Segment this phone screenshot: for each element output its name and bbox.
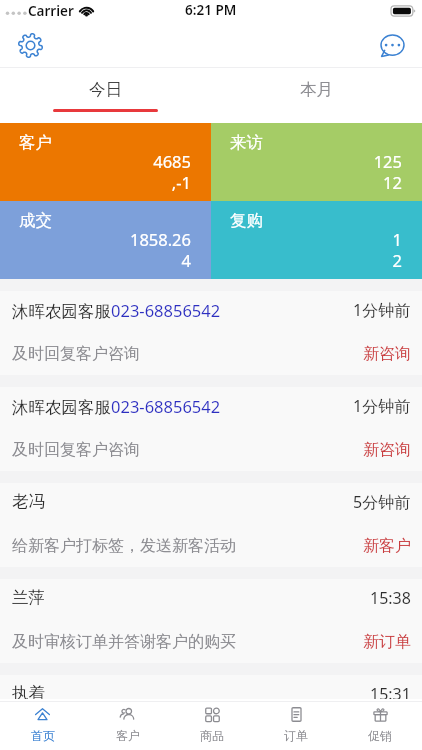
button[interactable]: Settings [13, 28, 47, 62]
staticText: 今日 [89, 79, 122, 100]
button[interactable]: 来访 [211, 123, 422, 201]
staticText: 15:31 [370, 683, 411, 699]
staticText: 5分钟前 [353, 491, 411, 513]
button[interactable]: 老冯 [0, 483, 422, 567]
staticText: 4685 ,-1 [153, 150, 191, 194]
staticText: 新咨询 [363, 344, 411, 364]
staticText: 客户 [19, 132, 52, 153]
staticText: Carrier [28, 2, 74, 20]
staticText: 1 2 [392, 228, 402, 272]
staticText: 促销 [368, 728, 392, 743]
button[interactable]: 兰萍 [0, 579, 422, 663]
button[interactable]: 成交 [0, 201, 211, 279]
staticText: 新客户 [363, 536, 411, 556]
staticText: 15:38 [370, 587, 411, 609]
button[interactable]: 商品 [170, 702, 254, 750]
staticText: 本月 [300, 79, 333, 100]
button[interactable]: 今日 [0, 68, 211, 123]
staticText: 客户 [116, 728, 140, 743]
button[interactable]: 执着 [0, 675, 422, 699]
staticText: 及时审核订单并答谢客户的购买 [12, 632, 236, 652]
staticText: 商品 [200, 728, 224, 743]
button[interactable]: Messages [375, 28, 409, 62]
staticText: 6:21 PM [185, 1, 237, 19]
staticText: 1分钟前 [353, 395, 411, 417]
button[interactable]: 订单 [254, 702, 338, 750]
button[interactable]: 客户 [85, 702, 170, 750]
button[interactable]: 促销 [338, 702, 422, 750]
button[interactable]: 沐晖农园客服023-68856542 [0, 387, 422, 471]
button[interactable]: 首页 [0, 702, 85, 750]
staticText: 订单 [284, 728, 308, 743]
staticText: 新订单 [363, 632, 411, 652]
staticText: 及时回复客户咨询 [12, 440, 140, 460]
button[interactable]: 本月 [211, 68, 422, 123]
staticText: 1分钟前 [353, 299, 411, 321]
staticText: 125 12 [373, 150, 402, 194]
staticText: 首页 [31, 728, 55, 743]
staticText: 1858.26 4 [129, 228, 191, 272]
staticText: 成交 [19, 210, 52, 231]
button[interactable]: 客户 [0, 123, 211, 201]
staticText: 及时回复客户咨询 [12, 344, 140, 364]
staticText: 沐晖农园客服023-68856542 [12, 395, 221, 418]
staticText: 新咨询 [363, 440, 411, 460]
staticText: 沐晖农园客服023-68856542 [12, 299, 221, 322]
staticText: 复购 [230, 210, 263, 231]
staticText: 来访 [230, 132, 263, 153]
staticText: 给新客户打标签，发送新客活动 [12, 536, 236, 556]
button[interactable]: 复购 [211, 201, 422, 279]
button[interactable]: 沐晖农园客服023-68856542 [0, 291, 422, 375]
staticText: 兰萍 [12, 587, 45, 608]
staticText: 执着 [12, 683, 45, 699]
staticText: 老冯 [12, 491, 45, 512]
